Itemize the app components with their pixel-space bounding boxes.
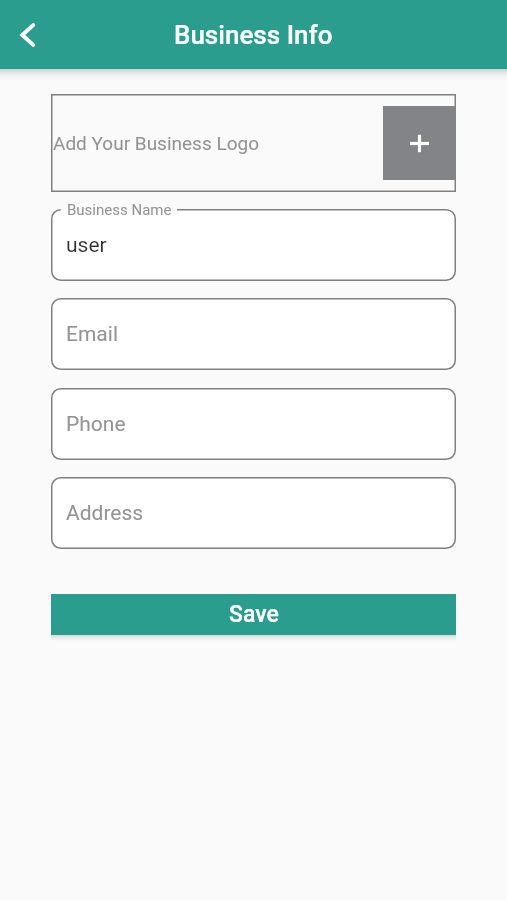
staticText: user [66,233,107,258]
staticText: Phone [66,412,126,437]
staticText: Business Name [67,201,172,219]
button[interactable]: Address [51,477,456,549]
button[interactable]: Email [51,298,456,370]
staticText: Save [229,601,279,628]
button[interactable]: Phone [51,388,456,460]
staticText: Email [66,322,118,347]
button[interactable]: Business Name [51,209,456,281]
button[interactable]: Save [51,594,456,635]
staticText: Business Info [174,20,333,50]
button[interactable]: Add logo [383,106,456,180]
staticText: Address [66,501,144,526]
button[interactable]: Add Your Business Logo [51,94,456,192]
staticText: Add Your Business Logo [53,132,260,154]
button[interactable]: Back [6,13,50,57]
